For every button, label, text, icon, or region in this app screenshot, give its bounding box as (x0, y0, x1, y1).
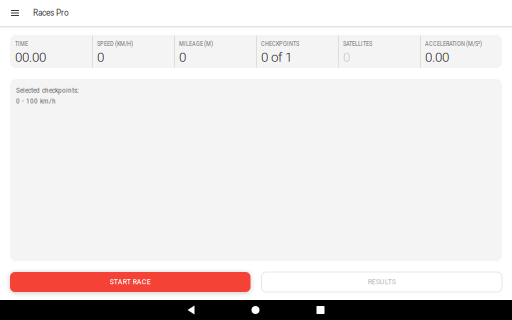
staticText: 00.00 (15, 49, 46, 65)
button[interactable]: Back (159, 300, 223, 320)
staticText: Selected checkpoints: (16, 86, 79, 95)
button[interactable]: RESULTS (261, 272, 502, 292)
button[interactable]: Home (223, 300, 288, 320)
staticText: 0 - 100 km/h (16, 97, 56, 105)
button[interactable]: START RACE (10, 272, 250, 292)
staticText: 0 of 1 (261, 49, 292, 65)
staticText: TIME (15, 40, 28, 47)
button[interactable]: Recent apps (288, 300, 353, 320)
staticText: Races Pro (33, 8, 69, 18)
staticText: 0 (179, 49, 186, 65)
staticText: 0 (343, 49, 350, 65)
staticText: SPEED (KM/H) (97, 40, 133, 47)
staticText: 0.00 (425, 49, 449, 65)
staticText: MILEAGE (M) (179, 40, 213, 47)
staticText: RESULTS (368, 278, 396, 286)
staticText: START RACE (110, 278, 151, 286)
staticText: CHECKPOINTS (261, 40, 299, 47)
button[interactable]: Menu (4, 0, 26, 26)
staticText: SATELLITES (343, 40, 372, 47)
staticText: 0 (97, 49, 104, 65)
staticText: ACCELERATION (M/S²) (425, 40, 482, 47)
